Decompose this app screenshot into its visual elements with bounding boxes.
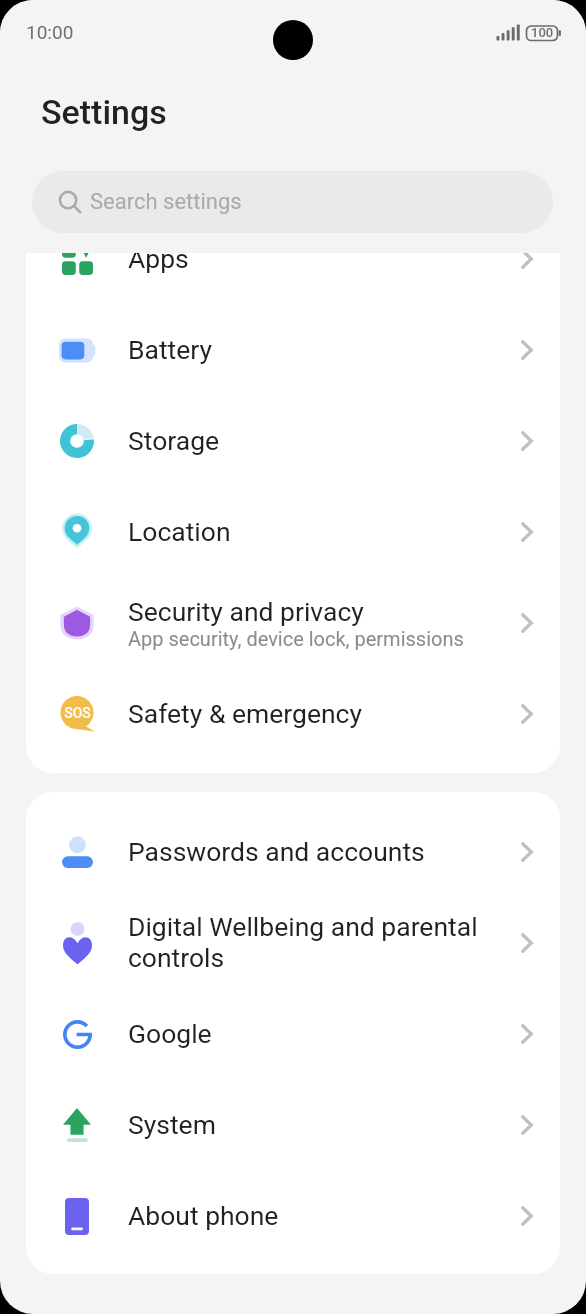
staticText: Storage — [128, 425, 220, 456]
button[interactable]: Apps — [26, 213, 560, 304]
button[interactable]: Passwords and accounts — [26, 806, 560, 897]
staticText: Security and privacy — [128, 596, 364, 627]
staticText: Location — [128, 516, 231, 547]
staticText: About phone — [128, 1200, 279, 1231]
button[interactable]: About phone — [26, 1170, 560, 1261]
staticText: Safety & emergency — [128, 698, 362, 729]
button[interactable]: Location — [26, 486, 560, 577]
staticText: Battery — [128, 334, 213, 365]
button[interactable]: Storage — [26, 395, 560, 486]
staticText: Google — [128, 1018, 212, 1049]
button[interactable]: System — [26, 1079, 560, 1170]
staticText: Search settings — [90, 189, 242, 215]
staticText: 10:00 — [26, 21, 74, 43]
staticText: SOS — [64, 705, 91, 721]
button[interactable]: Search settings — [32, 171, 553, 233]
button[interactable]: Security and privacy — [26, 577, 560, 668]
button[interactable]: Battery — [26, 304, 560, 395]
staticText: System — [128, 1109, 216, 1140]
staticText: 100 — [531, 25, 554, 40]
button[interactable]: Google — [26, 988, 560, 1079]
button[interactable]: SOS — [26, 668, 560, 759]
staticText: App security, device lock, permissions — [128, 627, 464, 650]
other: Camera — [273, 20, 313, 60]
staticText: Digital Wellbeing and parental controls — [128, 911, 494, 974]
staticText: Apps — [128, 243, 189, 274]
staticText: Passwords and accounts — [128, 836, 425, 867]
button[interactable]: Digital Wellbeing and parental controls — [26, 897, 560, 988]
staticText: Settings — [41, 92, 167, 132]
